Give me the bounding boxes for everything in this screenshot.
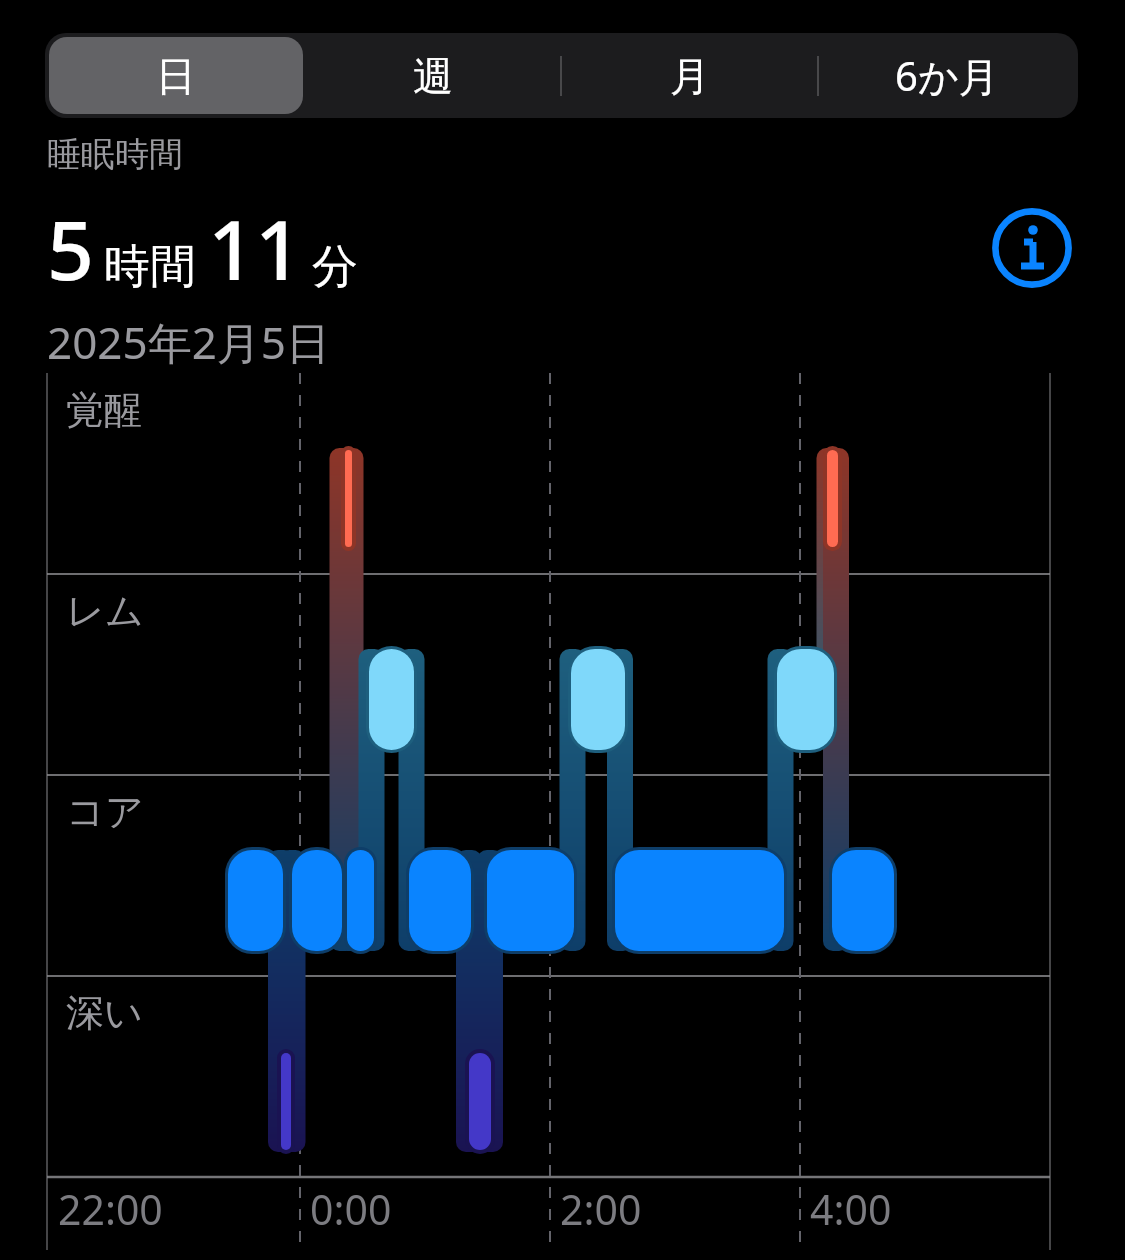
staticText: 4:00 — [810, 1181, 892, 1237]
staticText: レム — [66, 587, 144, 635]
staticText: 2025年2月5日 — [47, 312, 331, 372]
staticText: 6か月 — [895, 48, 999, 103]
staticText: 0:00 — [310, 1181, 392, 1237]
staticText: 時間 — [104, 238, 196, 296]
staticText: 5 — [47, 192, 94, 304]
button[interactable]: 日 — [49, 37, 303, 114]
staticText: 日 — [156, 51, 196, 101]
button[interactable] — [0, 0, 1125, 1260]
staticText: 深い — [66, 989, 143, 1037]
button[interactable]: 月 — [562, 37, 817, 114]
staticText: コア — [66, 788, 144, 836]
staticText: 22:00 — [58, 1181, 163, 1237]
staticText: 週 — [413, 51, 453, 101]
button[interactable]: 6か月 — [819, 37, 1074, 114]
staticText: 2:00 — [560, 1181, 642, 1237]
button[interactable]: 週 — [305, 37, 560, 114]
staticText: 分 — [312, 238, 358, 296]
staticText: 睡眠時間 — [47, 133, 183, 176]
staticText: 月 — [670, 51, 710, 101]
staticText: 覚醒 — [66, 386, 142, 434]
button[interactable]: 情報 — [992, 208, 1072, 288]
staticText: 11 — [208, 192, 302, 304]
